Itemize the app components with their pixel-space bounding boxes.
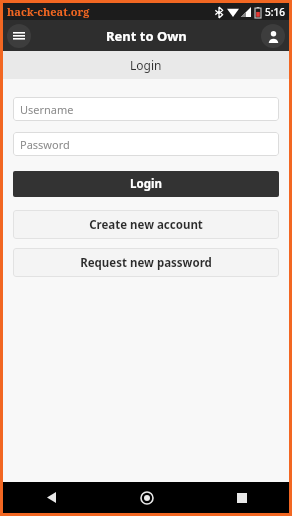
button[interactable]: Home [99,482,194,513]
button[interactable]: Password [13,132,279,156]
button[interactable]: Login [13,171,279,197]
staticText: Password [20,137,70,152]
staticText: 5:16 [265,5,285,19]
staticText: hack-cheat.org [7,4,90,19]
button[interactable]: Recent apps [194,482,289,513]
button[interactable]: Create new account [13,210,279,239]
staticText: Login [130,176,162,192]
staticText: Rent to Own [106,27,187,45]
button[interactable]: Username [13,97,279,121]
staticText: Create new account [89,217,203,233]
button[interactable]: Back [3,482,99,513]
button[interactable]: Request new password [13,248,279,277]
staticText: Login [130,57,162,73]
staticText: Request new password [80,255,212,271]
button[interactable]: Open navigation menu [7,24,31,48]
staticText: Username [20,102,74,117]
button[interactable]: Account [261,24,285,48]
